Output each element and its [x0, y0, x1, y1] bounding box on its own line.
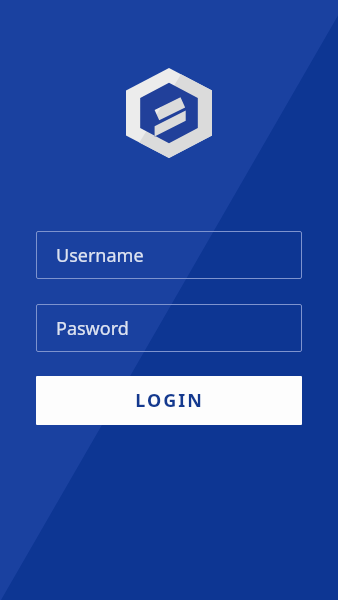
button[interactable]: Username	[36, 231, 302, 279]
button[interactable]: LOGIN	[36, 376, 302, 425]
other: App logo	[126, 68, 212, 158]
staticText: Pasword	[56, 316, 129, 341]
staticText: LOGIN	[135, 388, 204, 413]
staticText: Username	[56, 243, 144, 268]
button[interactable]: Pasword	[36, 304, 302, 352]
